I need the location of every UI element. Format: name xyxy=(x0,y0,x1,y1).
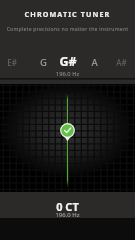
staticText: A xyxy=(91,56,98,69)
staticText: G# xyxy=(59,53,77,70)
button[interactable]: E# xyxy=(0,57,32,68)
staticText: Complete precisions no matter the instru… xyxy=(0,25,135,32)
button[interactable]: G# xyxy=(48,53,88,70)
staticText: 196.0 Hz xyxy=(0,70,135,78)
staticText: 196.0 Hz xyxy=(0,211,135,219)
button[interactable]: G xyxy=(23,56,63,69)
staticText: G xyxy=(40,56,47,69)
button[interactable]: 0 CT xyxy=(0,199,135,214)
staticText: E# xyxy=(7,57,17,68)
staticText: CHROMATIC TUNER xyxy=(0,9,135,19)
button[interactable]: A# xyxy=(101,57,135,68)
button[interactable]: A xyxy=(74,56,114,69)
staticText: A# xyxy=(116,57,127,68)
